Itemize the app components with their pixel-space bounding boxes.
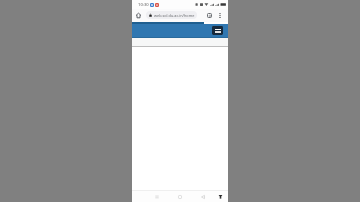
button[interactable]: Hide keyboard	[216, 191, 225, 202]
button[interactable]: More options	[215, 9, 225, 22]
button[interactable]: web.sol.du.ac.in/home	[146, 11, 197, 19]
button[interactable]: Home	[133, 9, 143, 22]
button[interactable]: Toggle navigation	[212, 26, 223, 35]
staticText: web.sol.du.ac.in/home	[154, 13, 195, 18]
button[interactable]: Recent apps	[152, 191, 161, 202]
button[interactable]: Home	[175, 191, 184, 202]
staticText: 10:30	[138, 2, 149, 8]
button[interactable]: Back	[198, 191, 207, 202]
button[interactable]: Tabs	[204, 9, 214, 22]
